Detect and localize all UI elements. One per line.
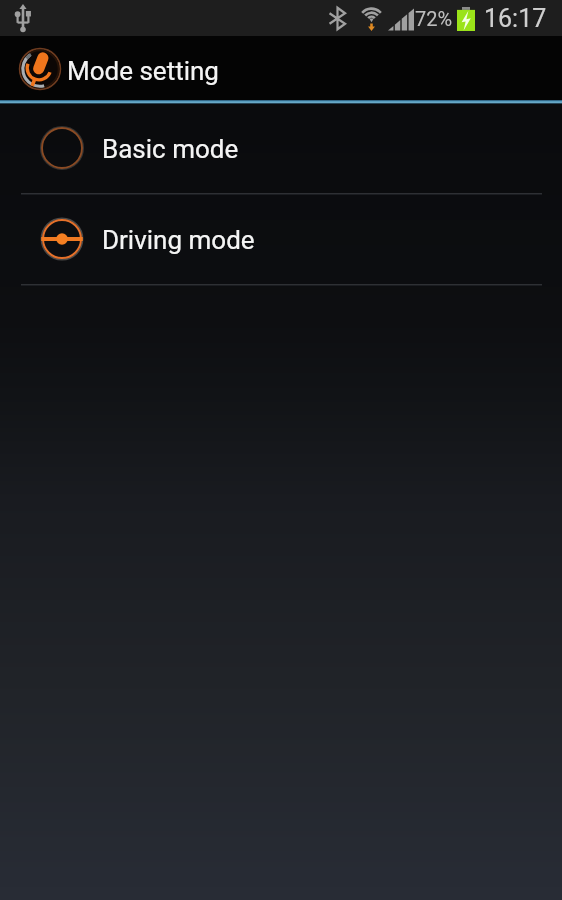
other: USB connected <box>14 4 32 33</box>
button[interactable]: Basic mode <box>0 104 562 193</box>
staticText: Driving mode <box>102 225 255 255</box>
staticText: 16:17 <box>484 4 547 33</box>
button[interactable]: Driving mode <box>0 195 562 284</box>
other: App icon <box>18 47 62 91</box>
staticText: 72% <box>415 7 453 30</box>
button[interactable]: App icon <box>0 36 562 100</box>
staticText: Basic mode <box>102 134 239 164</box>
staticText: Mode setting <box>67 56 219 86</box>
